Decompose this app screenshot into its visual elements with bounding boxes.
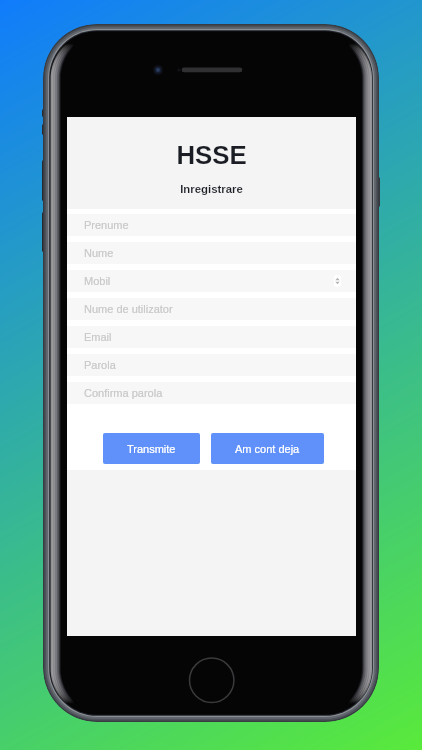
staticText: HSSE [67, 141, 356, 170]
staticText: Inregistrare [67, 183, 356, 196]
staticText: Email [84, 331, 112, 343]
button[interactable]: Transmite [103, 433, 200, 464]
staticText: Am cont deja [235, 443, 300, 455]
button[interactable]: Prenume [67, 214, 356, 236]
button[interactable]: Increment or decrement value [334, 275, 341, 287]
button[interactable]: Confirma parola [67, 382, 356, 404]
staticText: Transmite [127, 443, 176, 455]
staticText: Mobil [84, 275, 111, 287]
staticText: Prenume [84, 219, 129, 231]
button[interactable]: Nume de utilizator [67, 298, 356, 320]
button[interactable]: Am cont deja [211, 433, 324, 464]
button[interactable]: Nume [67, 242, 356, 264]
staticText: Nume de utilizator [84, 303, 173, 315]
button[interactable]: Email [67, 326, 356, 348]
staticText: Confirma parola [84, 387, 163, 399]
staticText: Nume [84, 247, 114, 259]
staticText: Parola [84, 359, 116, 371]
button[interactable]: Mobil [67, 270, 356, 292]
button[interactable]: Parola [67, 354, 356, 376]
